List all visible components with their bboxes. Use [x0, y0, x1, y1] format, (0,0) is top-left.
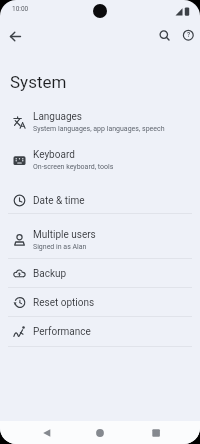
staticText: System: [10, 72, 67, 92]
staticText: System languages, app languages, speech: [33, 125, 165, 133]
button[interactable]: [6, 27, 25, 46]
button[interactable]: [36, 422, 57, 444]
button[interactable]: Date & time: [0, 186, 200, 215]
button[interactable]: Languages: [0, 103, 200, 141]
staticText: Keyboard: [33, 149, 75, 161]
button[interactable]: Keyboard: [0, 141, 200, 179]
staticText: Date & time: [33, 195, 85, 207]
staticText: ?: [187, 31, 191, 39]
button[interactable]: [155, 26, 173, 44]
button[interactable]: Backup: [0, 259, 200, 288]
button[interactable]: Performance: [0, 317, 200, 346]
button[interactable]: [89, 422, 111, 444]
button[interactable]: Reset options: [0, 288, 200, 317]
button[interactable]: Multiple users: [0, 218, 200, 262]
button[interactable]: [179, 26, 197, 44]
staticText: Signed in as Alan: [33, 243, 87, 251]
staticText: On-screen keyboard, tools: [33, 163, 114, 171]
button[interactable]: [145, 422, 167, 444]
staticText: Performance: [33, 326, 91, 338]
staticText: Backup: [33, 268, 67, 280]
staticText: Languages: [33, 111, 82, 123]
staticText: Reset options: [33, 297, 95, 309]
staticText: Multiple users: [33, 229, 96, 241]
staticText: 10:00: [12, 5, 29, 13]
